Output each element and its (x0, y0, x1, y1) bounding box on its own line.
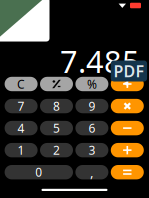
button[interactable]: 9 (75, 99, 108, 113)
staticText: C (17, 76, 25, 92)
staticText: 0 (35, 164, 42, 180)
staticText: 3 (88, 142, 95, 158)
button[interactable]: 4 (5, 121, 38, 135)
button[interactable]: Multiply (111, 99, 144, 113)
button[interactable]: 6 (75, 121, 108, 135)
staticText: % (87, 76, 97, 92)
button[interactable]: 7 (5, 99, 38, 113)
button[interactable]: 1 (5, 143, 38, 157)
staticText: 4 (18, 120, 25, 136)
button[interactable]: Divide (111, 77, 144, 91)
button[interactable]: , (75, 165, 108, 179)
button[interactable]: Subtract (111, 121, 144, 135)
button[interactable]: Add (111, 143, 144, 157)
staticText: 2 (53, 142, 60, 158)
button[interactable]: 0 (5, 165, 73, 179)
button[interactable]: % (75, 77, 108, 91)
staticText: PDF (113, 60, 144, 82)
staticText: 8 (53, 98, 60, 114)
button[interactable]: Plus minus (40, 77, 73, 91)
button[interactable]: 8 (40, 99, 73, 113)
staticText: , (90, 163, 94, 181)
button[interactable]: Equals (111, 165, 144, 179)
button[interactable]: 3 (75, 143, 108, 157)
staticText: 5 (53, 120, 60, 136)
staticText: 9 (88, 98, 95, 114)
staticText: 6 (88, 120, 95, 136)
button[interactable]: 2 (40, 143, 73, 157)
staticText: 7 (18, 98, 25, 114)
staticText: 1 (18, 142, 25, 158)
staticText: 7.485 (60, 41, 140, 81)
button[interactable]: C (5, 77, 38, 91)
button[interactable]: 5 (40, 121, 73, 135)
